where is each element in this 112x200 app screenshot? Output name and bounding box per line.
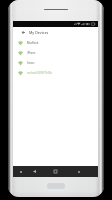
button[interactable]: Sonos [13,58,98,68]
button[interactable]: Back [29,166,40,177]
staticText: android-3090f7fcf5b [27,71,52,75]
button[interactable]: android-3090f7fcf5b [13,68,98,78]
button[interactable]: Hide keyboard [15,166,26,177]
button[interactable]: Home [50,166,61,177]
staticText: My Devices [29,30,49,35]
button[interactable]: Recents [73,166,84,177]
button[interactable]: Back [18,27,29,38]
staticText: Sonos [27,61,35,65]
staticText: iPhone [27,51,36,55]
staticText: MacBook [27,41,39,45]
button[interactable]: MacBook [13,38,98,48]
button[interactable]: iPhone [13,48,98,58]
